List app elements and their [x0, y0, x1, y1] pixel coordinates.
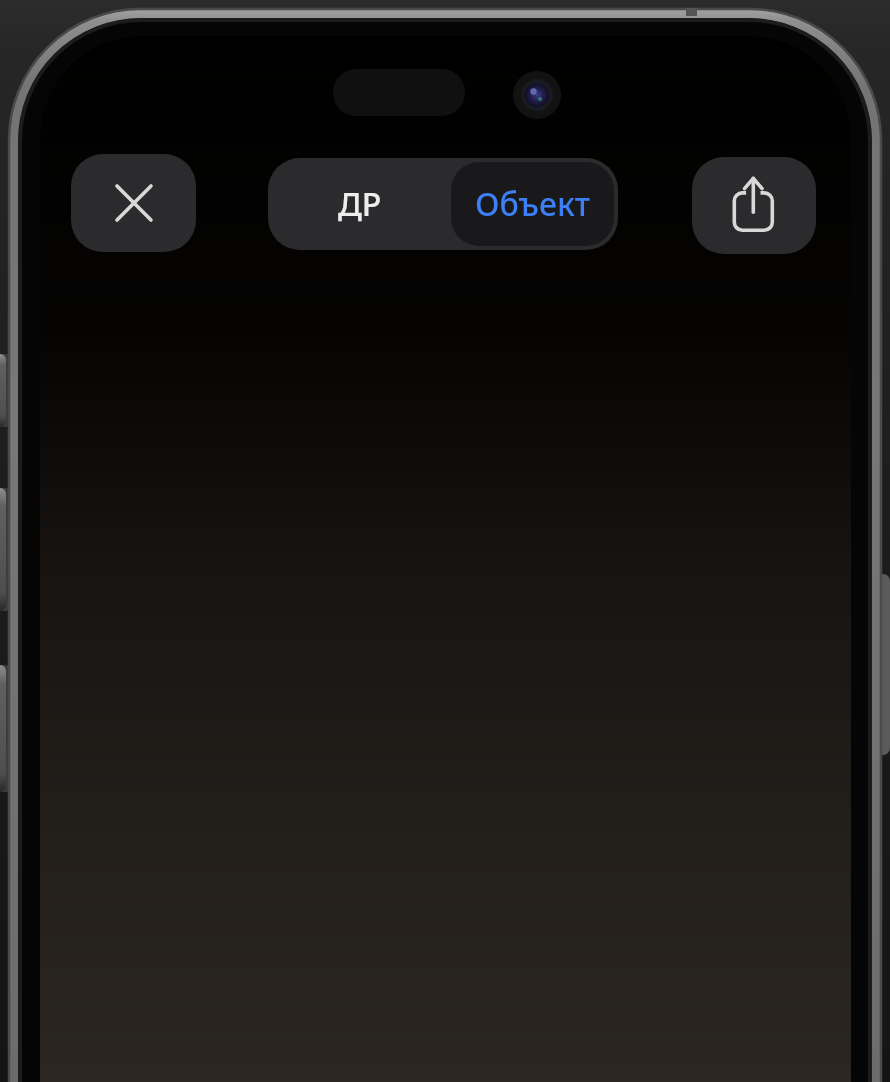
- button[interactable]: [692, 157, 816, 254]
- button[interactable]: Объект: [451, 162, 614, 246]
- button[interactable]: [71, 154, 196, 252]
- staticText: ДР: [338, 182, 382, 226]
- button[interactable]: ДР: [268, 158, 451, 250]
- staticText: Объект: [475, 182, 590, 226]
